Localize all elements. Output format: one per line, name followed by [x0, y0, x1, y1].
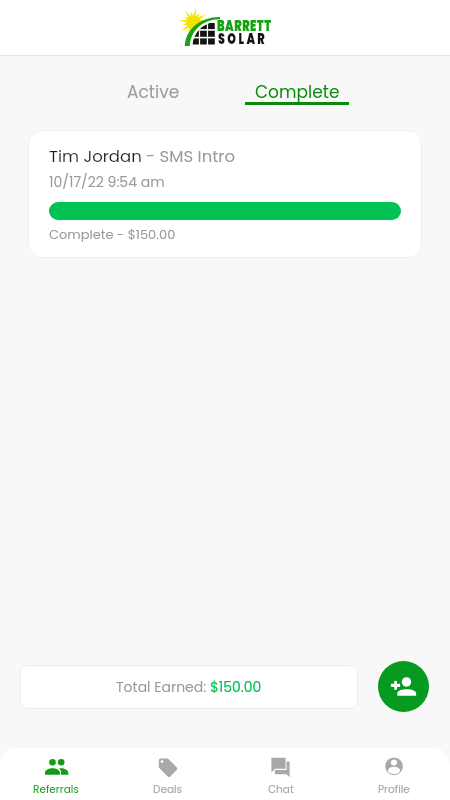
- button[interactable]: Add referral: [378, 661, 429, 712]
- button[interactable]: Profile: [337, 756, 450, 800]
- staticText: Chat: [268, 782, 294, 797]
- staticText: Active: [127, 80, 180, 104]
- staticText: BARRETT: [217, 15, 272, 36]
- staticText: SOLAR: [218, 28, 268, 49]
- button[interactable]: Active: [81, 80, 225, 105]
- button[interactable]: Total Earned: $150.00: [20, 665, 358, 709]
- button[interactable]: Referrals: [0, 756, 112, 800]
- staticText: Profile: [378, 782, 410, 797]
- button[interactable]: Chat: [224, 756, 337, 800]
- staticText: Complete - $150.00: [49, 225, 176, 243]
- staticText: Total Earned: $150.00: [116, 677, 262, 697]
- staticText: Deals: [153, 782, 183, 797]
- staticText: Tim Jordan - SMS Intro: [49, 145, 235, 168]
- staticText: 10/17/22 9:54 am: [49, 172, 165, 192]
- button[interactable]: Deals: [112, 756, 224, 800]
- staticText: Complete: [255, 80, 340, 104]
- staticText: Referrals: [33, 782, 79, 797]
- button[interactable]: Tim Jordan - SMS Intro: [28, 130, 422, 258]
- button[interactable]: Complete: [225, 80, 369, 105]
